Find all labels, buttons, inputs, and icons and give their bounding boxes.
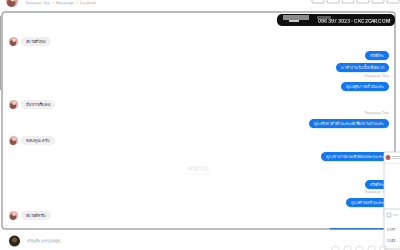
button[interactable]: ดูแลร่างกายและพักผ่อนเยอะๆนะคะ bbox=[0, 152, 400, 161]
staticText: สวัสดีค่ะ bbox=[370, 181, 384, 188]
staticText: ดูแลรักษาตัวดีๆนะคะอย่าลืมทานยานะคะ bbox=[314, 120, 384, 127]
button[interactable]: สวัสดีค่ะ bbox=[0, 51, 400, 60]
button[interactable]: ดูแลรักษาตัวดีๆนะคะอย่าลืมทานยานะคะ bbox=[0, 119, 400, 128]
staticText: Thanawan Thor bbox=[364, 111, 389, 115]
staticText: ขอบคุณ ครับ bbox=[26, 137, 50, 144]
button[interactable]: สบายดีครับ bbox=[0, 211, 400, 220]
staticText: เขียนถึง Messenger… bbox=[27, 238, 63, 244]
staticText: 096 397 3023 - CKC2CAR.COM bbox=[318, 18, 390, 24]
button[interactable]: ดูแลสุขภาพด้วยนะคะ bbox=[0, 82, 400, 91]
staticText: ดูแลสุขภาพด้วยนะคะ bbox=[346, 83, 384, 90]
staticText: Thanawan Thor bbox=[364, 190, 389, 194]
staticText: Thanawan Thor • Messenger • Facebook bbox=[25, 1, 96, 5]
staticText: สบายดีครับ bbox=[26, 212, 46, 219]
button[interactable]: Recorder panel bbox=[384, 152, 400, 218]
staticText: สวัสดีค่ะ bbox=[370, 52, 384, 59]
button[interactable]: สบายดีไหม bbox=[0, 37, 400, 46]
button[interactable]: เขียนถึง Messenger… bbox=[0, 234, 400, 248]
button[interactable]: ดูแลตัวเองดีๆนะคะ bbox=[0, 198, 400, 207]
staticText: Thanawan Thor bbox=[364, 74, 389, 78]
button[interactable]: ขอบคุณ ครับ bbox=[0, 136, 400, 145]
staticText: ดูแลร่างกายและพักผ่อนเยอะๆนะคะ bbox=[326, 153, 384, 160]
button[interactable]: สวัสดีค่ะ bbox=[0, 180, 400, 189]
staticText: มาทำงานวันนี้เหนื่อยมาก bbox=[341, 64, 384, 71]
staticText: SCUTTLE bbox=[188, 166, 209, 171]
button[interactable]: Capture menu bbox=[384, 209, 400, 249]
staticText: Scre bbox=[387, 227, 395, 232]
staticText: สบายดีไหม bbox=[26, 38, 46, 45]
staticText: มีอาการเจ็บคอ bbox=[26, 101, 50, 108]
button[interactable]: มาทำงานวันนี้เหนื่อยมาก bbox=[0, 63, 400, 72]
button[interactable]: มีอาการเจ็บคอ bbox=[0, 100, 400, 109]
staticText: Subt bbox=[387, 238, 395, 243]
staticText: ดูแลตัวเองดีๆนะคะ bbox=[351, 199, 384, 206]
